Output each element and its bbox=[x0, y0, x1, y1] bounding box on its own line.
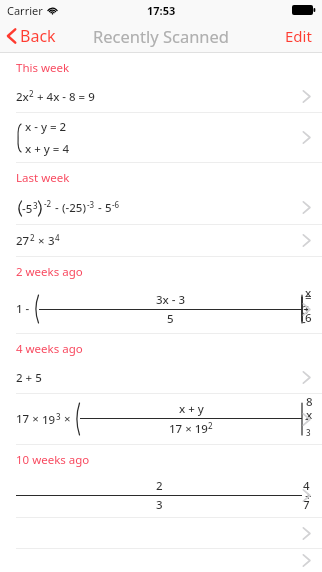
button[interactable]: x - y = 2 bbox=[0, 113, 322, 162]
other: Open bbox=[302, 526, 311, 541]
staticText: 10 weeks ago bbox=[16, 452, 90, 468]
staticText: 3x - 3 bbox=[156, 292, 186, 308]
staticText: Back bbox=[20, 25, 56, 47]
staticText: 5 bbox=[105, 200, 112, 216]
button[interactable]: -5 bbox=[0, 191, 322, 224]
staticText: Recently Scanned bbox=[93, 25, 229, 47]
other: Open bbox=[302, 233, 311, 248]
staticText: 3 bbox=[33, 200, 38, 211]
staticText: 5 bbox=[167, 311, 174, 327]
staticText: 2 bbox=[208, 420, 213, 431]
staticText: -6 bbox=[112, 199, 120, 210]
staticText: 1 - bbox=[16, 301, 33, 317]
other: Open bbox=[302, 488, 311, 503]
button[interactable]: 1 - bbox=[0, 285, 322, 333]
staticText: x + y bbox=[179, 401, 204, 417]
staticText: 2 bbox=[30, 232, 35, 243]
staticText: x - y = 2 bbox=[25, 119, 67, 135]
staticText: Edit bbox=[285, 26, 312, 46]
staticText: 2 weeks ago bbox=[16, 264, 83, 280]
staticText: 17 × 19 bbox=[169, 421, 208, 437]
staticText: 3 bbox=[48, 233, 55, 249]
staticText: + 4x - 8 = 9 bbox=[34, 89, 95, 105]
other: Open bbox=[302, 200, 311, 215]
staticText: x + y = 4 bbox=[25, 141, 70, 157]
staticText: 3 bbox=[56, 411, 61, 422]
other: Open bbox=[302, 553, 311, 568]
staticText: - bbox=[95, 200, 105, 216]
staticText: 4 weeks ago bbox=[16, 341, 83, 357]
staticText: 2 bbox=[156, 478, 163, 494]
staticText: -5 bbox=[22, 201, 33, 217]
staticText: 27 bbox=[16, 233, 30, 249]
staticText: × bbox=[61, 411, 74, 427]
staticText: 2x bbox=[16, 89, 29, 105]
staticText: This week bbox=[16, 60, 70, 76]
other: Open bbox=[302, 412, 311, 427]
staticText: Last week bbox=[16, 170, 70, 186]
staticText: 17:53 bbox=[147, 3, 176, 18]
button[interactable]: 17 × bbox=[0, 394, 322, 444]
other: Open bbox=[302, 89, 311, 104]
staticText: 19 bbox=[42, 412, 56, 428]
button[interactable]: 2 bbox=[0, 473, 322, 517]
staticText: × bbox=[35, 233, 48, 249]
staticText: -3 bbox=[87, 199, 95, 210]
button[interactable]: Edit bbox=[275, 20, 322, 52]
staticText: 2 + 5 bbox=[16, 370, 42, 386]
staticText: 3 bbox=[156, 497, 163, 513]
staticText: 4 bbox=[55, 232, 60, 243]
staticText: - bbox=[52, 200, 62, 216]
other: Open bbox=[302, 130, 311, 145]
button[interactable]: 2x bbox=[0, 81, 322, 112]
staticText: -2 bbox=[44, 198, 52, 209]
staticText: 2 bbox=[29, 88, 34, 99]
staticText: (-25) bbox=[62, 200, 87, 216]
other: Open bbox=[302, 370, 311, 385]
button[interactable]: 27 bbox=[0, 225, 322, 256]
button[interactable]: Back bbox=[0, 20, 64, 52]
button[interactable]: 2 + 5 bbox=[0, 362, 322, 393]
staticText: 17 × bbox=[16, 411, 42, 427]
staticText: Carrier bbox=[7, 3, 43, 18]
other: Open bbox=[302, 302, 311, 317]
